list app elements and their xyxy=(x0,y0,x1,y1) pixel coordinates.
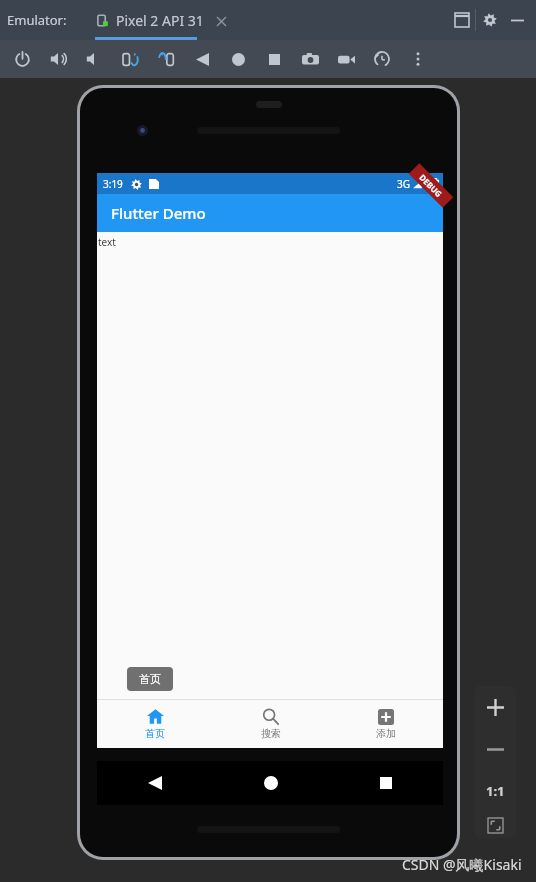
staticText: 搜索 xyxy=(261,727,281,740)
staticText: Pixel 2 API 31 xyxy=(116,11,204,30)
button[interactable]: 1:1 xyxy=(474,770,516,812)
button[interactable]: Record screen xyxy=(328,42,364,76)
button[interactable]: Home xyxy=(213,761,328,805)
button[interactable]: Rotate left xyxy=(112,42,148,76)
button[interactable]: Home xyxy=(220,42,256,76)
button[interactable]: Rotate right xyxy=(148,42,184,76)
button[interactable]: Zoom in xyxy=(474,686,516,728)
button[interactable]: Minimize xyxy=(504,7,530,33)
staticText: text xyxy=(98,235,116,249)
staticText: 首页 xyxy=(139,672,161,686)
button[interactable]: 搜索 xyxy=(213,700,328,748)
button[interactable]: Settings xyxy=(476,6,504,34)
staticText: CSDN @风曦Kisaki xyxy=(402,855,522,874)
button[interactable]: Volume up xyxy=(40,42,76,76)
staticText: Emulator: xyxy=(7,11,67,29)
button[interactable]: Power xyxy=(4,42,40,76)
button[interactable]: Volume down xyxy=(76,42,112,76)
button[interactable]: History xyxy=(364,42,400,76)
button[interactable]: More xyxy=(400,42,436,76)
staticText: 添加 xyxy=(376,727,396,740)
button[interactable]: Overview xyxy=(256,42,292,76)
staticText: 3G xyxy=(397,177,410,191)
button[interactable]: Fit to screen xyxy=(474,812,516,838)
staticText: 1:1 xyxy=(486,782,505,800)
button[interactable]: Zoom out xyxy=(474,728,516,770)
staticText: DEBUG xyxy=(417,172,445,199)
button[interactable]: Screenshot xyxy=(292,42,328,76)
button[interactable]: Back xyxy=(97,761,213,805)
staticText: Flutter Demo xyxy=(111,203,206,223)
staticText: 3:19 xyxy=(103,177,123,191)
button[interactable]: Back xyxy=(184,42,220,76)
staticText: 首页 xyxy=(145,727,165,740)
staticText: ! xyxy=(426,178,429,190)
button[interactable]: 首页 xyxy=(97,700,213,748)
button[interactable]: Restore xyxy=(449,7,475,33)
button[interactable]: Recent apps xyxy=(328,761,443,805)
button[interactable]: 添加 xyxy=(328,700,443,748)
button[interactable]: Close tab xyxy=(213,13,229,29)
